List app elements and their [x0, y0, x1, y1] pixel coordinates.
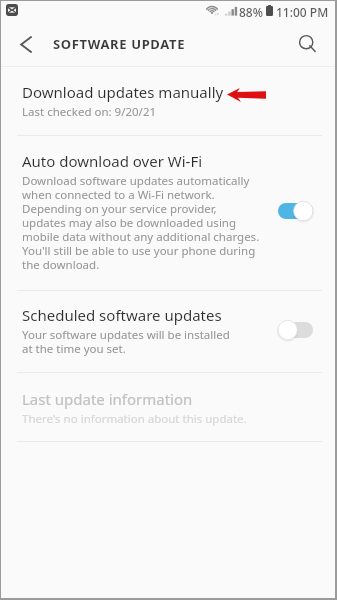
button[interactable]: Auto download on	[278, 200, 315, 222]
staticText: Last checked on: 9/20/21	[22, 104, 157, 120]
staticText: 11:00 PM	[276, 4, 329, 20]
staticText: Last update information	[22, 389, 193, 409]
staticText: SOFTWARE UPDATE	[53, 35, 186, 53]
button[interactable]: Search	[291, 27, 325, 61]
button[interactable]: Download updates manually	[1, 68, 335, 135]
staticText: Scheduled software updates	[22, 305, 222, 325]
staticText: Your software updates will be installed …	[22, 327, 237, 357]
button[interactable]: Scheduled software updates	[1, 292, 335, 373]
button[interactable]: Scheduled updates off	[278, 319, 315, 341]
button[interactable]: Auto download over Wi-Fi	[1, 137, 335, 291]
staticText: 88%	[239, 4, 263, 20]
staticText: Download software updates automatically …	[22, 173, 261, 273]
staticText: Auto download over Wi-Fi	[22, 151, 203, 171]
button[interactable]: Navigate up	[9, 27, 43, 61]
staticText: Download updates manually	[22, 82, 224, 102]
staticText: There's no information about this update…	[22, 411, 247, 427]
